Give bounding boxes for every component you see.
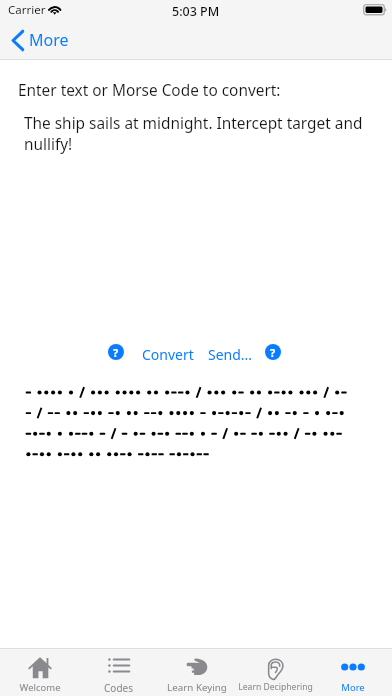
button[interactable]: Help <box>108 344 124 360</box>
button[interactable]: Learn Keying <box>158 649 236 696</box>
staticText: Codes <box>104 681 133 695</box>
button[interactable]: Codes <box>79 649 158 696</box>
button[interactable]: Help <box>265 344 281 360</box>
staticText: 5:03 PM <box>172 3 220 20</box>
staticText: ? <box>270 345 276 360</box>
staticText: Learn Keying <box>167 681 227 694</box>
staticText: Carrier <box>8 2 46 18</box>
staticText: Enter text or Morse Code to convert: <box>18 80 281 101</box>
button[interactable]: Learn Deciphering <box>236 649 314 696</box>
staticText: Convert <box>142 345 194 364</box>
staticText: ? <box>113 345 119 360</box>
button[interactable]: More <box>314 649 392 696</box>
staticText: Welcome <box>19 681 61 694</box>
staticText: Send... <box>208 345 253 364</box>
staticText: Learn Deciphering <box>238 681 313 693</box>
button[interactable]: Send... <box>202 340 259 369</box>
button[interactable]: More <box>0 25 81 55</box>
staticText: The ship sails at midnight. Intercept ta… <box>24 113 363 155</box>
staticText: More <box>29 29 69 51</box>
button[interactable]: Convert <box>136 340 200 369</box>
staticText: More <box>341 681 365 694</box>
button[interactable]: Welcome <box>0 649 79 696</box>
